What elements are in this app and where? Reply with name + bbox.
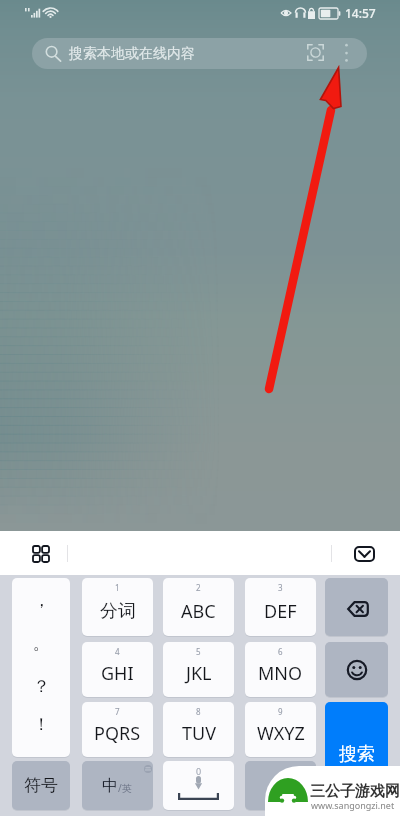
staticText: 2 (196, 582, 201, 593)
staticText: 。 (33, 633, 50, 654)
button[interactable]: 符号 (12, 761, 70, 810)
staticText: MNO (258, 661, 303, 686)
staticText: www.sangongzi.net (311, 799, 395, 811)
button[interactable] (245, 761, 316, 810)
staticText: 9 (278, 706, 283, 717)
staticText: 中 (102, 776, 118, 796)
button[interactable]: 9 (245, 702, 316, 757)
staticText: 分词 (100, 600, 136, 623)
staticText: ABC (181, 599, 216, 624)
button[interactable]: 7 (82, 702, 153, 757)
button[interactable]: 1 (82, 578, 153, 636)
button[interactable] (325, 578, 388, 636)
button[interactable]: 8 (163, 702, 234, 757)
button[interactable]: ， (12, 578, 70, 757)
button[interactable]: 2 (163, 578, 234, 636)
staticText: ， (33, 590, 50, 611)
button[interactable]: 搜索 (325, 702, 388, 810)
staticText: PQRS (94, 721, 141, 746)
button[interactable]: 0 (163, 761, 234, 810)
staticText: 符号 (24, 775, 58, 796)
staticText: 3 (278, 582, 283, 593)
button[interactable]: 搜索本地或在线内容 (32, 38, 367, 69)
staticText: WXYZ (257, 721, 305, 746)
staticText: 8 (196, 706, 201, 717)
staticText: /英 (118, 781, 132, 795)
staticText: 搜索本地或在线内容 (69, 45, 195, 63)
staticText: ！ (33, 714, 50, 735)
button[interactable]: 6 (245, 642, 316, 697)
button[interactable]: 4 (82, 642, 153, 697)
staticText: JKL (186, 661, 212, 686)
button[interactable]: Keyboard menu (33, 546, 49, 562)
staticText: GHI (101, 661, 134, 686)
staticText: 搜索 (339, 743, 375, 766)
staticText: 6 (278, 646, 283, 657)
button[interactable]: Lens (307, 44, 324, 61)
button[interactable] (325, 642, 388, 697)
staticText: ？ (33, 676, 50, 697)
button[interactable]: More options (342, 43, 351, 64)
staticText: 1 (115, 582, 120, 593)
button[interactable]: Hide keyboard (354, 546, 375, 562)
staticText: 5 (196, 646, 201, 657)
button[interactable]: 5 (163, 642, 234, 697)
staticText: 0 (196, 765, 202, 777)
staticText: TUV (182, 721, 216, 746)
staticText: 14:57 (345, 5, 376, 21)
staticText: 4 (115, 646, 120, 657)
staticText: 三公子游戏网 (310, 782, 400, 801)
staticText: 7 (115, 706, 120, 717)
button[interactable]: 3 (245, 578, 316, 636)
staticText: DEF (264, 599, 297, 624)
button[interactable]: 中 (82, 761, 153, 810)
